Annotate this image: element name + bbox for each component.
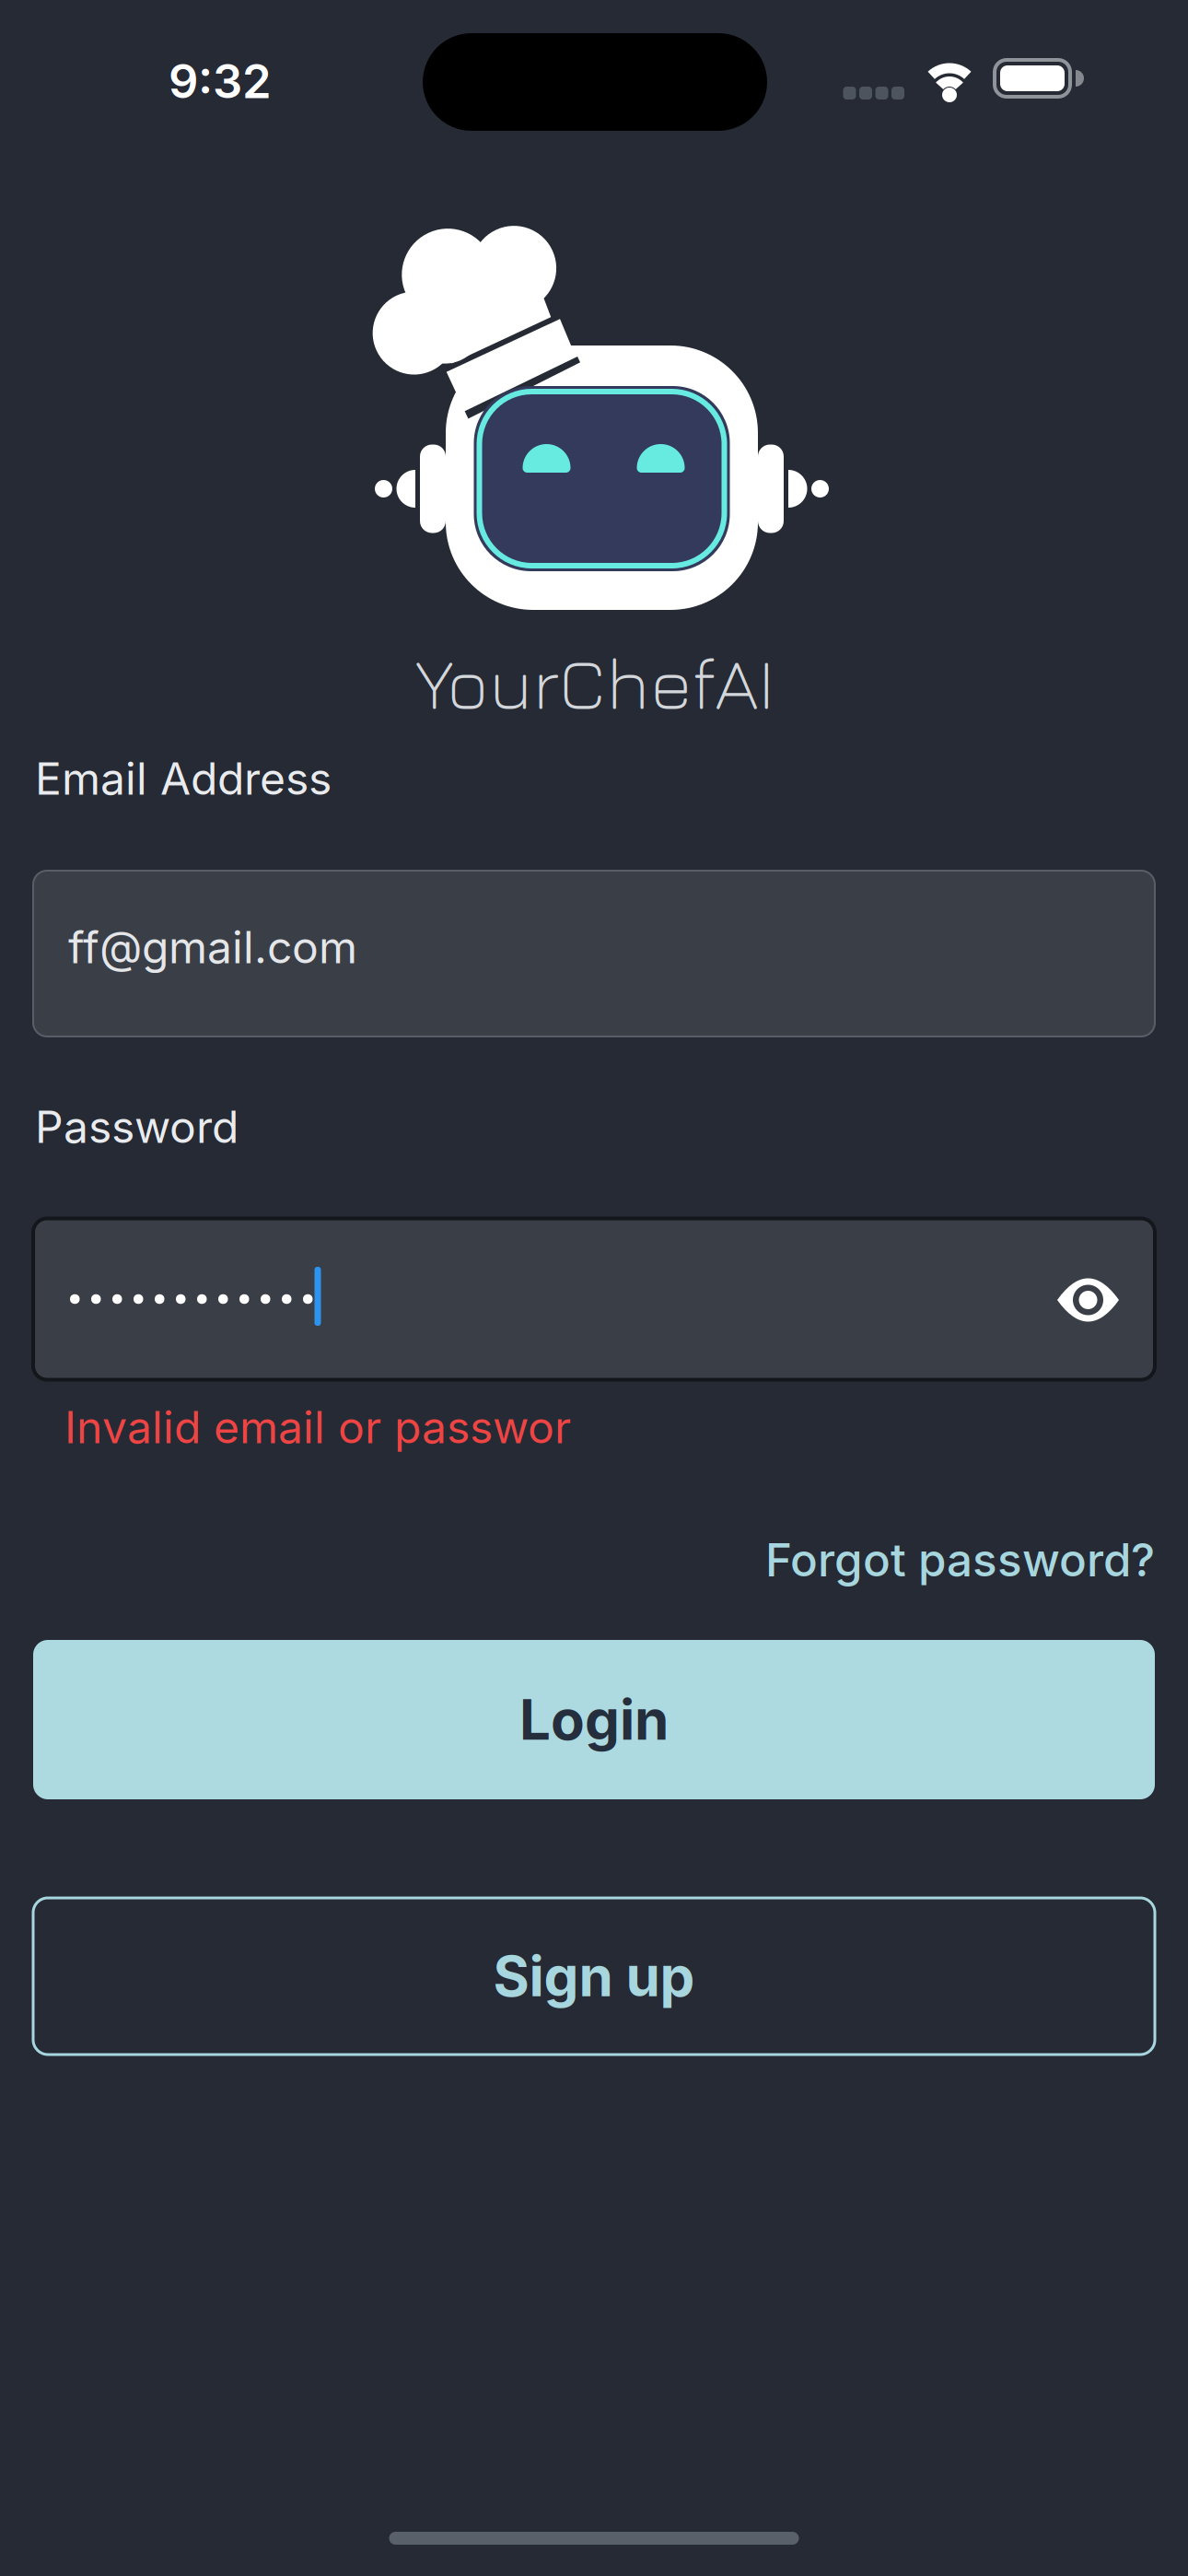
staticText: YourChefAI bbox=[416, 639, 774, 725]
button[interactable]: Forgot password? bbox=[765, 1533, 1155, 1587]
button[interactable]: ff@gmail.com bbox=[33, 871, 1155, 1036]
staticText: Invalid email or passwor bbox=[64, 1401, 571, 1453]
staticText: ff@gmail.com bbox=[68, 921, 357, 973]
staticText: Sign up bbox=[493, 1944, 695, 2009]
staticText: Login bbox=[519, 1687, 669, 1752]
button[interactable] bbox=[1057, 1279, 1119, 1321]
staticText: Password bbox=[35, 1101, 239, 1153]
button[interactable]: Sign up bbox=[33, 1898, 1155, 2055]
button[interactable] bbox=[33, 1218, 1155, 1380]
staticText: Email Address bbox=[35, 752, 332, 805]
button[interactable]: Login bbox=[33, 1640, 1155, 1799]
staticText: 9:32 bbox=[169, 54, 272, 109]
staticText: Forgot password? bbox=[765, 1533, 1155, 1587]
